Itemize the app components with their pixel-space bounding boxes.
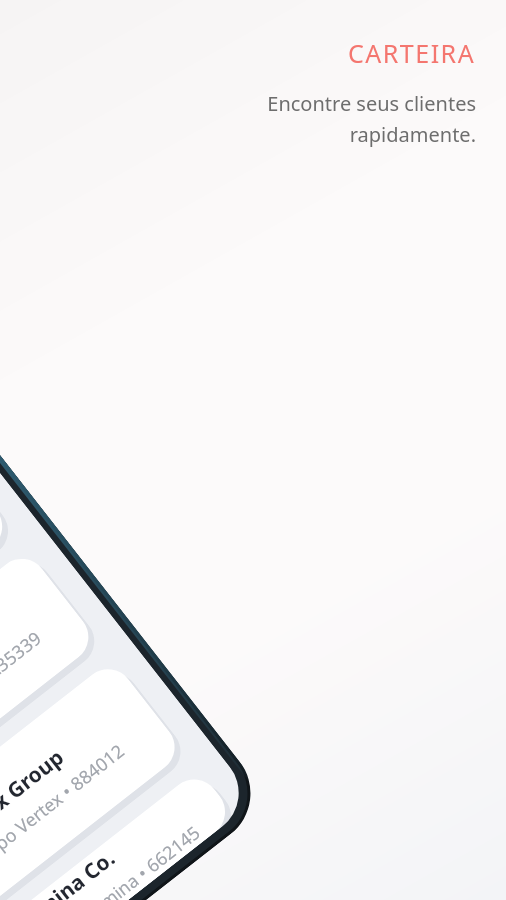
- staticText: Grupo Vertex • 884012: [0, 738, 130, 875]
- button[interactable]: Lumina Co.: [0, 769, 236, 900]
- button[interactable]: Carteira client list preview: [0, 93, 271, 900]
- staticText: CARTEIRA: [348, 36, 476, 70]
- button[interactable]: Aurora Design: [0, 548, 99, 861]
- staticText: Lumina Co.: [11, 844, 121, 900]
- staticText: Encontre seus clientes rapidamente.: [267, 90, 476, 147]
- button[interactable]: Vertex Group: [0, 659, 185, 900]
- staticText: Grupo Aurora • 235339: [0, 626, 46, 765]
- staticText: Vertex Group: [0, 742, 70, 851]
- button[interactable]: Greenleaf: [0, 438, 13, 750]
- staticText: Grupo Lumina • 662145: [33, 820, 206, 900]
